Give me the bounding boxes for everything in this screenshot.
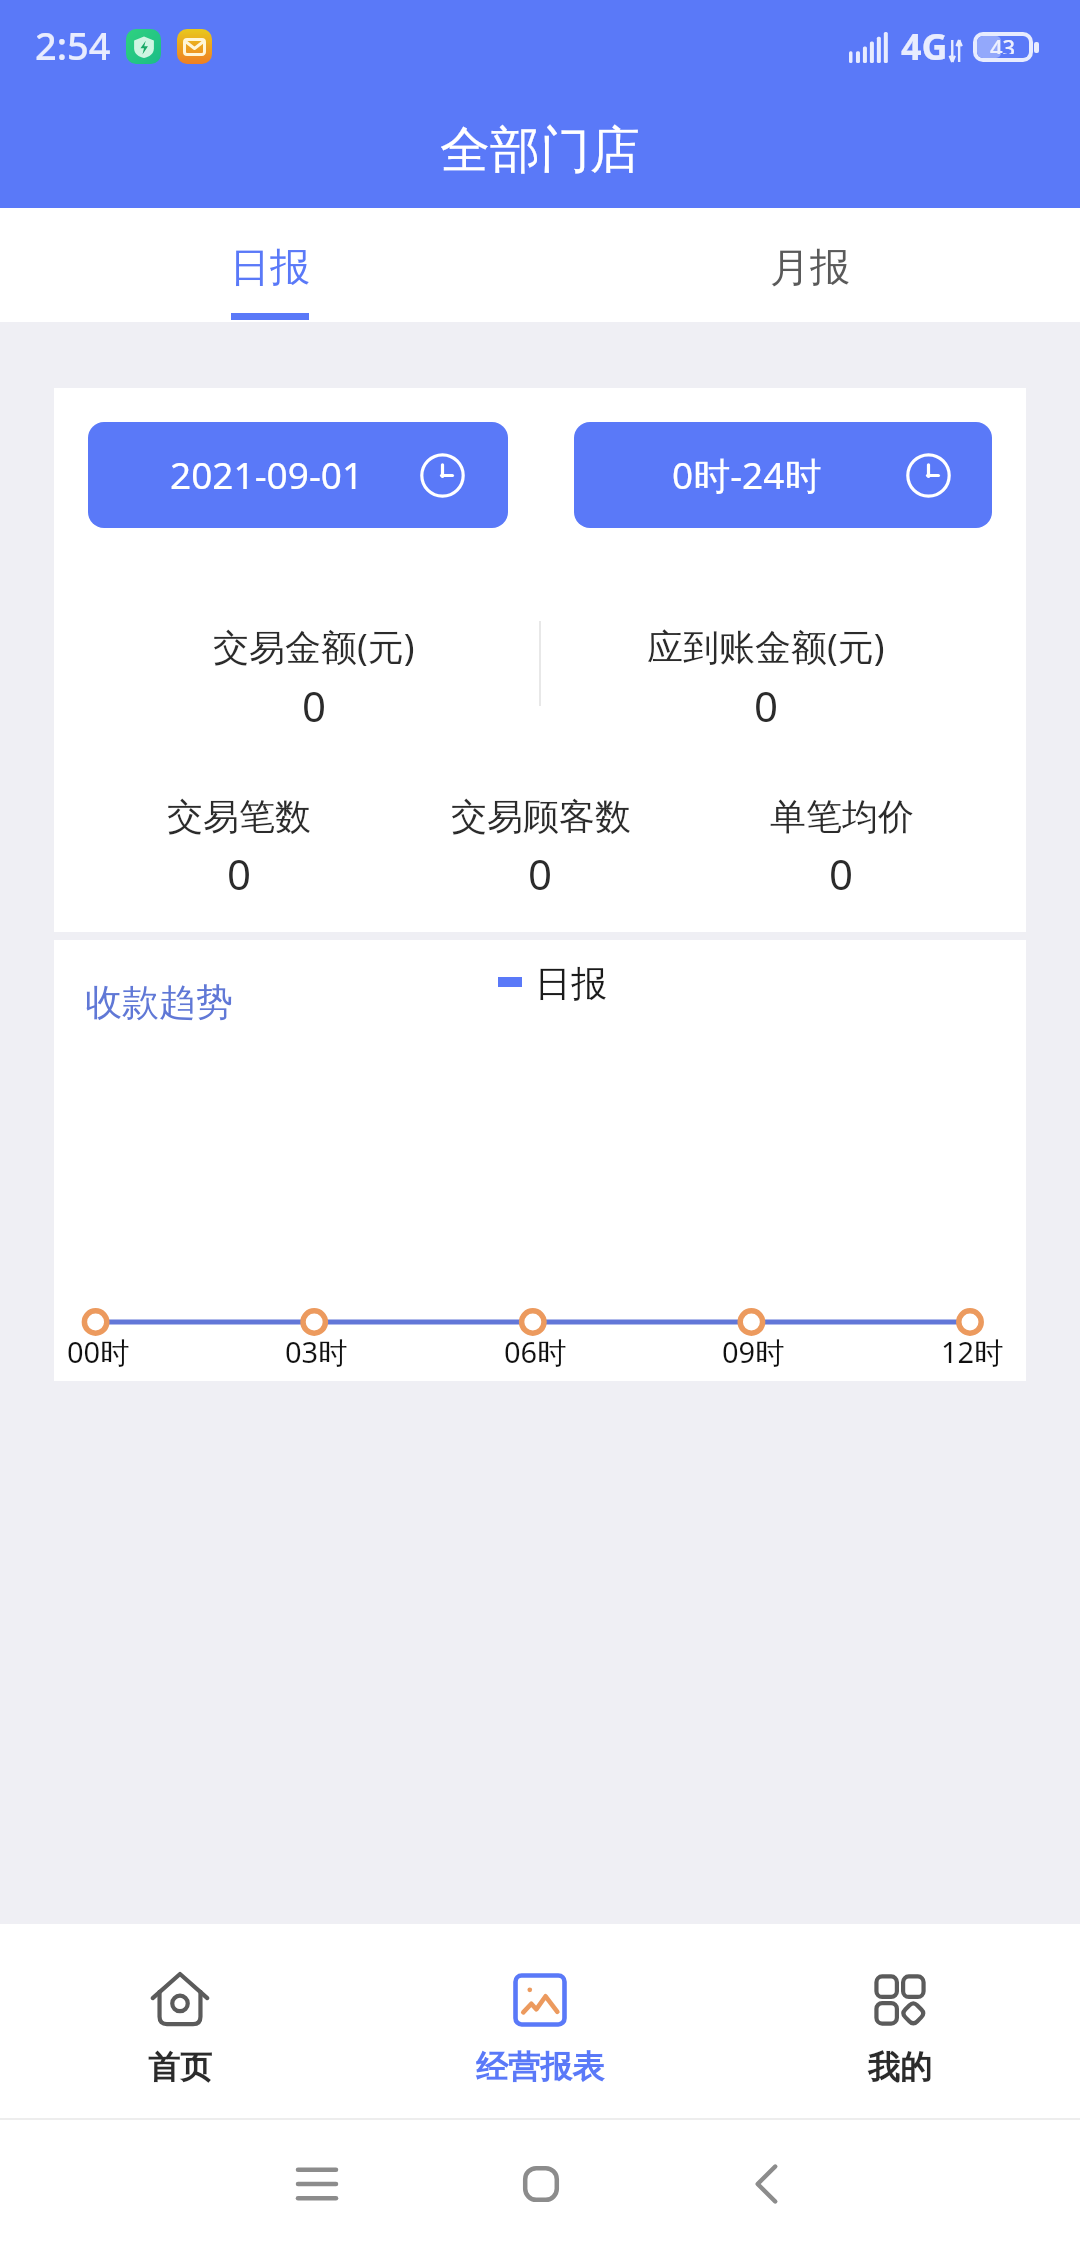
staticText: 03时	[285, 1332, 348, 1372]
staticText: 交易笔数	[167, 794, 311, 839]
staticText: 单笔均价	[770, 794, 914, 839]
staticText: 0	[754, 677, 779, 734]
staticText: 4G	[901, 22, 948, 71]
staticText: 09时	[722, 1332, 785, 1372]
staticText: 2:54	[35, 19, 111, 71]
staticText: 交易金额(元)	[213, 622, 415, 671]
staticText: 06时	[504, 1332, 567, 1372]
button[interactable]: 2021-09-01	[88, 422, 508, 528]
staticText: 0时-24时	[672, 449, 822, 500]
staticText: 经营报表	[476, 2047, 604, 2087]
staticText: 00时	[67, 1332, 130, 1372]
button[interactable]: 0时-24时	[574, 422, 992, 528]
staticText: 0	[227, 845, 252, 902]
staticText: 0	[829, 845, 854, 902]
button[interactable]: 我的	[720, 1924, 1080, 2118]
staticText: 交易顾客数	[451, 794, 631, 839]
staticText: 日报	[230, 242, 310, 292]
button[interactable]: 日报	[0, 208, 540, 322]
staticText: 全部门店	[440, 119, 640, 182]
staticText: 收款趋势	[85, 979, 233, 1026]
button[interactable]: Recents	[257, 2120, 377, 2248]
button[interactable]: Back	[706, 2120, 826, 2248]
staticText: 月报	[770, 242, 850, 292]
button[interactable]: 首页	[0, 1924, 360, 2118]
button[interactable]: Home	[481, 2120, 601, 2248]
staticText: 我的	[868, 2047, 932, 2087]
button[interactable]: 月报	[540, 208, 1080, 322]
staticText: 日报	[535, 961, 607, 1006]
staticText: 2021-09-01	[170, 449, 364, 499]
staticText: 首页	[148, 2047, 212, 2087]
staticText: 应到账金额(元)	[647, 622, 885, 671]
staticText: 12时	[941, 1332, 1004, 1372]
staticText: 43	[990, 36, 1016, 54]
staticText: 0	[528, 845, 553, 902]
staticText: 0	[302, 677, 327, 734]
button[interactable]: 经营报表	[360, 1924, 720, 2118]
